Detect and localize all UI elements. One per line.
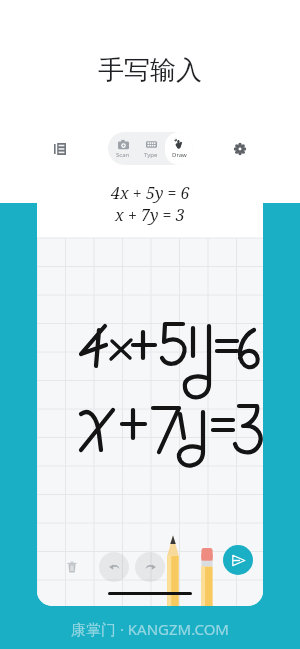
button[interactable]: Pencil [162,534,184,606]
staticText: Draw [172,151,187,159]
button[interactable]: Undo [99,552,129,582]
staticText: 康掌门 · KANGZM.COM [71,619,229,639]
staticText: Type [144,151,158,159]
button[interactable]: Eraser [197,548,217,606]
button[interactable]: Draw [165,132,193,165]
staticText: 手写输入 [98,54,202,87]
button[interactable]: Redo [135,552,165,582]
button[interactable]: Delete [59,554,85,580]
staticText: x + 7y = 3 [115,204,185,226]
button[interactable]: History [45,134,75,164]
button[interactable]: Send [223,545,253,575]
button[interactable]: Type [137,132,165,165]
staticText: Scan [116,151,130,159]
staticText: 4x + 5y = 6 [111,182,190,204]
button[interactable]: Settings [225,134,255,164]
button[interactable]: Scan [108,132,137,165]
